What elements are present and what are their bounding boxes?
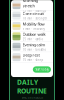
button[interactable]: Mobility flow	[11, 21, 53, 31]
button[interactable]: Core circuit	[11, 10, 53, 20]
button[interactable]: Outdoor walk	[11, 31, 53, 41]
staticText: 25 min · cardio	[22, 37, 43, 41]
staticText: 10 min · breathe	[22, 48, 46, 51]
staticText: EFFECTIVE RESULTS	[21, 96, 42, 99]
staticText: 12 min · warm up	[22, 9, 46, 12]
button[interactable]: Start today	[33, 66, 51, 73]
button[interactable]: Morning stretch	[11, 0, 53, 10]
staticText: Deep rest	[22, 52, 39, 58]
staticText: Core circuit	[22, 11, 43, 16]
staticText: Outdoor walk	[22, 32, 45, 37]
button[interactable]: Deep rest	[11, 52, 53, 62]
staticText: Morning stretch	[22, 0, 37, 8]
staticText: 9 min · recovery	[22, 27, 44, 31]
staticText: Evening calm	[22, 42, 45, 47]
staticText: 18 min · strength	[22, 17, 47, 20]
staticText: Mobility flow	[22, 21, 44, 26]
staticText: 15 min · sleep	[22, 58, 43, 62]
button[interactable]: Evening calm	[11, 42, 53, 52]
staticText: DAILY ROUTINE	[17, 78, 47, 95]
staticText: Start today	[35, 68, 48, 71]
